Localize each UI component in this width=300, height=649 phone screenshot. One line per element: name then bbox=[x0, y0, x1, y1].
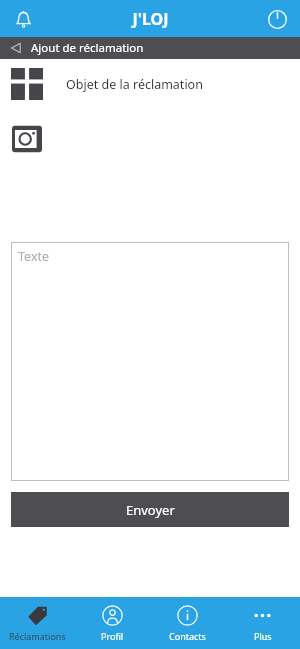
button[interactable]: Objet de la réclamation bbox=[0, 68, 300, 100]
staticText: Ajout de réclamation bbox=[31, 40, 144, 56]
other: Réclamations bbox=[27, 605, 48, 626]
button[interactable]: Power off bbox=[262, 4, 292, 34]
button[interactable]: Envoyer bbox=[11, 492, 289, 527]
button[interactable]: Back bbox=[0, 37, 300, 59]
staticText: Objet de la réclamation bbox=[66, 76, 203, 93]
staticText: Envoyer bbox=[126, 501, 175, 519]
staticText: Contacts bbox=[169, 630, 206, 642]
button[interactable]: Profil bbox=[75, 605, 150, 642]
staticText: Plus bbox=[254, 630, 272, 642]
button[interactable]: Notifications bbox=[8, 4, 38, 34]
staticText: Réclamations bbox=[9, 630, 66, 642]
other: Back bbox=[10, 42, 22, 54]
button[interactable]: Contacts bbox=[150, 605, 225, 642]
staticText: Profil bbox=[101, 630, 124, 642]
button[interactable]: Réclamations bbox=[0, 605, 75, 642]
staticText: J'LOJ bbox=[132, 8, 169, 30]
other: Plus bbox=[252, 605, 273, 626]
other: Profil bbox=[102, 605, 123, 626]
button[interactable]: Add photo bbox=[12, 124, 42, 154]
button[interactable]: Plus bbox=[225, 605, 300, 642]
button[interactable]: Texte bbox=[11, 242, 289, 481]
other: Contacts bbox=[177, 605, 198, 626]
staticText: Texte bbox=[18, 248, 50, 265]
